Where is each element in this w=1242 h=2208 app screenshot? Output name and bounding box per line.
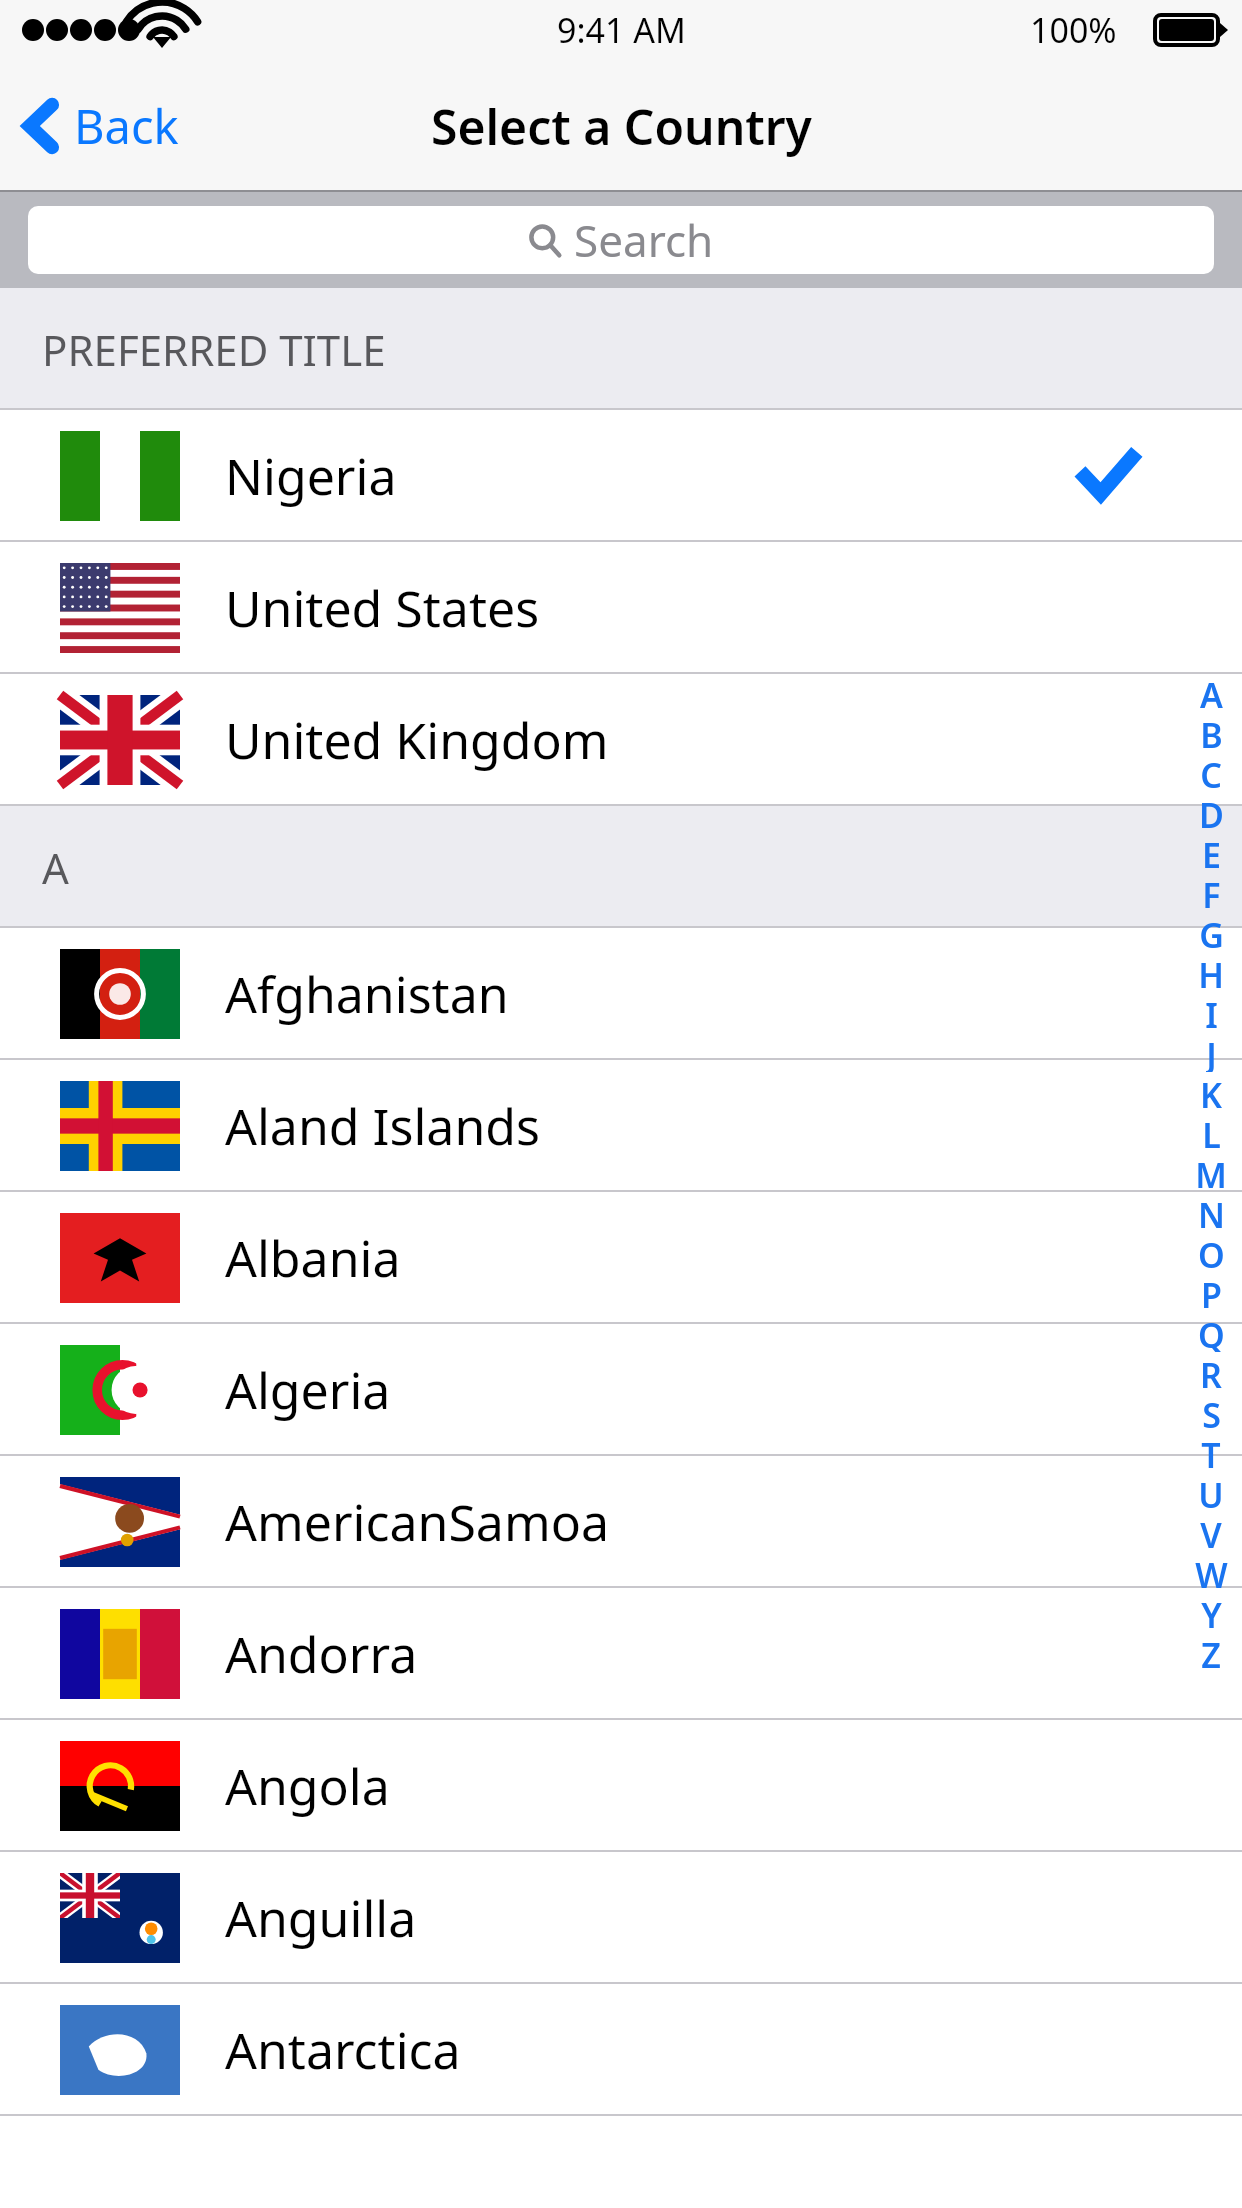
button[interactable]: Algeria (0, 1324, 1242, 1456)
staticText: C (1200, 752, 1222, 792)
button[interactable]: AmericanSamoa (0, 1456, 1242, 1588)
button[interactable]: Angola (0, 1720, 1242, 1852)
staticText: V (1200, 1512, 1222, 1552)
staticText: A (42, 839, 69, 896)
staticText: Back (74, 94, 179, 158)
staticText: P (1201, 1272, 1222, 1312)
staticText: K (1200, 1072, 1222, 1112)
button[interactable]: Search (28, 206, 1214, 274)
staticText: Nigeria (225, 442, 397, 510)
button[interactable]: United States (0, 542, 1242, 674)
staticText: L (1202, 1112, 1221, 1152)
staticText: A (1200, 672, 1223, 712)
staticText: 100% (1030, 7, 1117, 53)
staticText: W (1195, 1552, 1228, 1592)
button[interactable]: Nigeria (0, 410, 1242, 542)
staticText: AmericanSamoa (225, 1488, 609, 1556)
button[interactable]: Afghanistan (0, 928, 1242, 1060)
button[interactable]: Alphabet index (1180, 672, 1242, 1672)
staticText: Algeria (225, 1356, 391, 1424)
staticText: E (1202, 832, 1221, 872)
staticText: Angola (225, 1752, 390, 1820)
staticText: 9:41 AM (557, 7, 686, 53)
staticText: Antarctica (225, 2016, 461, 2084)
staticText: G (1199, 912, 1224, 952)
staticText: R (1200, 1352, 1222, 1392)
button[interactable]: United Kingdom (0, 674, 1242, 806)
staticText: United States (225, 574, 540, 642)
staticText: Andorra (225, 1620, 418, 1688)
staticText: PREFERRED TITLE (42, 321, 386, 378)
staticText: B (1200, 712, 1223, 752)
staticText: Z (1201, 1632, 1221, 1672)
staticText: O (1198, 1232, 1225, 1272)
staticText: Search (574, 210, 714, 270)
button[interactable]: Anguilla (0, 1852, 1242, 1984)
button[interactable]: Back (0, 60, 203, 192)
staticText: United Kingdom (225, 706, 609, 774)
staticText: Q (1198, 1312, 1225, 1352)
staticText: U (1198, 1472, 1224, 1512)
staticText: S (1202, 1392, 1221, 1432)
staticText: I (1205, 992, 1218, 1032)
staticText: Aland Islands (225, 1092, 540, 1160)
staticText: F (1202, 872, 1221, 912)
button[interactable]: Aland Islands (0, 1060, 1242, 1192)
staticText: J (1206, 1032, 1217, 1072)
staticText: Albania (225, 1224, 401, 1292)
staticText: N (1198, 1192, 1225, 1232)
staticText: H (1198, 952, 1224, 992)
button[interactable]: Andorra (0, 1588, 1242, 1720)
staticText: D (1199, 792, 1224, 832)
button[interactable]: Antarctica (0, 1984, 1242, 2116)
other: Selected (1082, 453, 1134, 499)
staticText: Afghanistan (225, 960, 509, 1028)
staticText: T (1201, 1432, 1221, 1472)
staticText: Anguilla (225, 1884, 417, 1952)
staticText: Select a Country (431, 94, 812, 159)
staticText: M (1195, 1152, 1227, 1192)
button[interactable]: Albania (0, 1192, 1242, 1324)
staticText: Y (1201, 1592, 1222, 1632)
